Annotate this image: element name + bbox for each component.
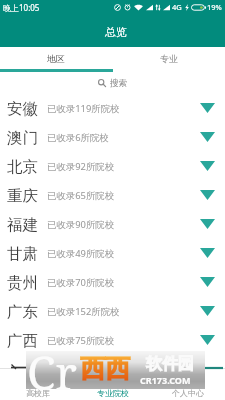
staticText: 软件园 [146,354,194,374]
button[interactable]: 甘肃 [0,239,225,268]
button[interactable]: 广西 [0,326,225,355]
staticText: 晚上10:05 [3,2,40,13]
button[interactable]: 高校库 [0,369,75,400]
staticText: 专业院校 [97,388,129,398]
staticText: 已收录49所院校 [47,247,115,260]
staticText: 已收录65所院校 [47,189,115,202]
staticText: 已收录70所院校 [47,276,115,289]
button[interactable]: 地区 [0,47,112,69]
button[interactable]: 专业 [112,47,225,69]
staticText: 重庆 [7,186,38,206]
staticText: 已收录6所院校 [47,131,109,144]
staticText: 广西 [7,331,38,351]
staticText: 安徽 [7,99,38,119]
button[interactable]: 搜索 [0,72,225,94]
button[interactable]: 广东 [0,297,225,326]
staticText: 北京 [7,157,38,177]
staticText: 个人中心 [172,388,204,398]
staticText: CR173.COM [140,374,191,386]
staticText: Cr [27,341,77,400]
button[interactable]: 重庆 [0,181,225,210]
staticText: 甘肃 [7,244,38,264]
staticText: 4G [172,2,182,12]
staticText: 已收录75所院校 [47,334,115,347]
button[interactable]: 个人中心 [150,369,225,400]
staticText: 总览 [105,25,127,39]
button[interactable]: 安徽 [0,94,225,123]
staticText: 广东 [7,302,38,322]
staticText: 已收录90所院校 [47,218,115,231]
staticText: 已收录92所院校 [47,160,115,173]
staticText: 贵州 [7,273,38,293]
staticText: 西西 [80,353,130,384]
button[interactable]: 澳门 [0,123,225,152]
button[interactable]: 北京 [0,152,225,181]
button[interactable]: 贵州 [0,268,225,297]
staticText: 已收录119所院校 [47,102,120,115]
staticText: 19% [207,2,222,12]
staticText: 搜索 [110,78,127,89]
staticText: 澳门 [7,128,38,148]
button[interactable]: 福建 [0,210,225,239]
staticText: 福建 [7,215,38,235]
staticText: 高校库 [26,388,50,398]
button[interactable]: 专业院校 [75,369,150,400]
staticText: 已收录152所院校 [47,305,120,318]
staticText: 专业 [160,53,178,64]
staticText: 地区 [47,53,65,64]
